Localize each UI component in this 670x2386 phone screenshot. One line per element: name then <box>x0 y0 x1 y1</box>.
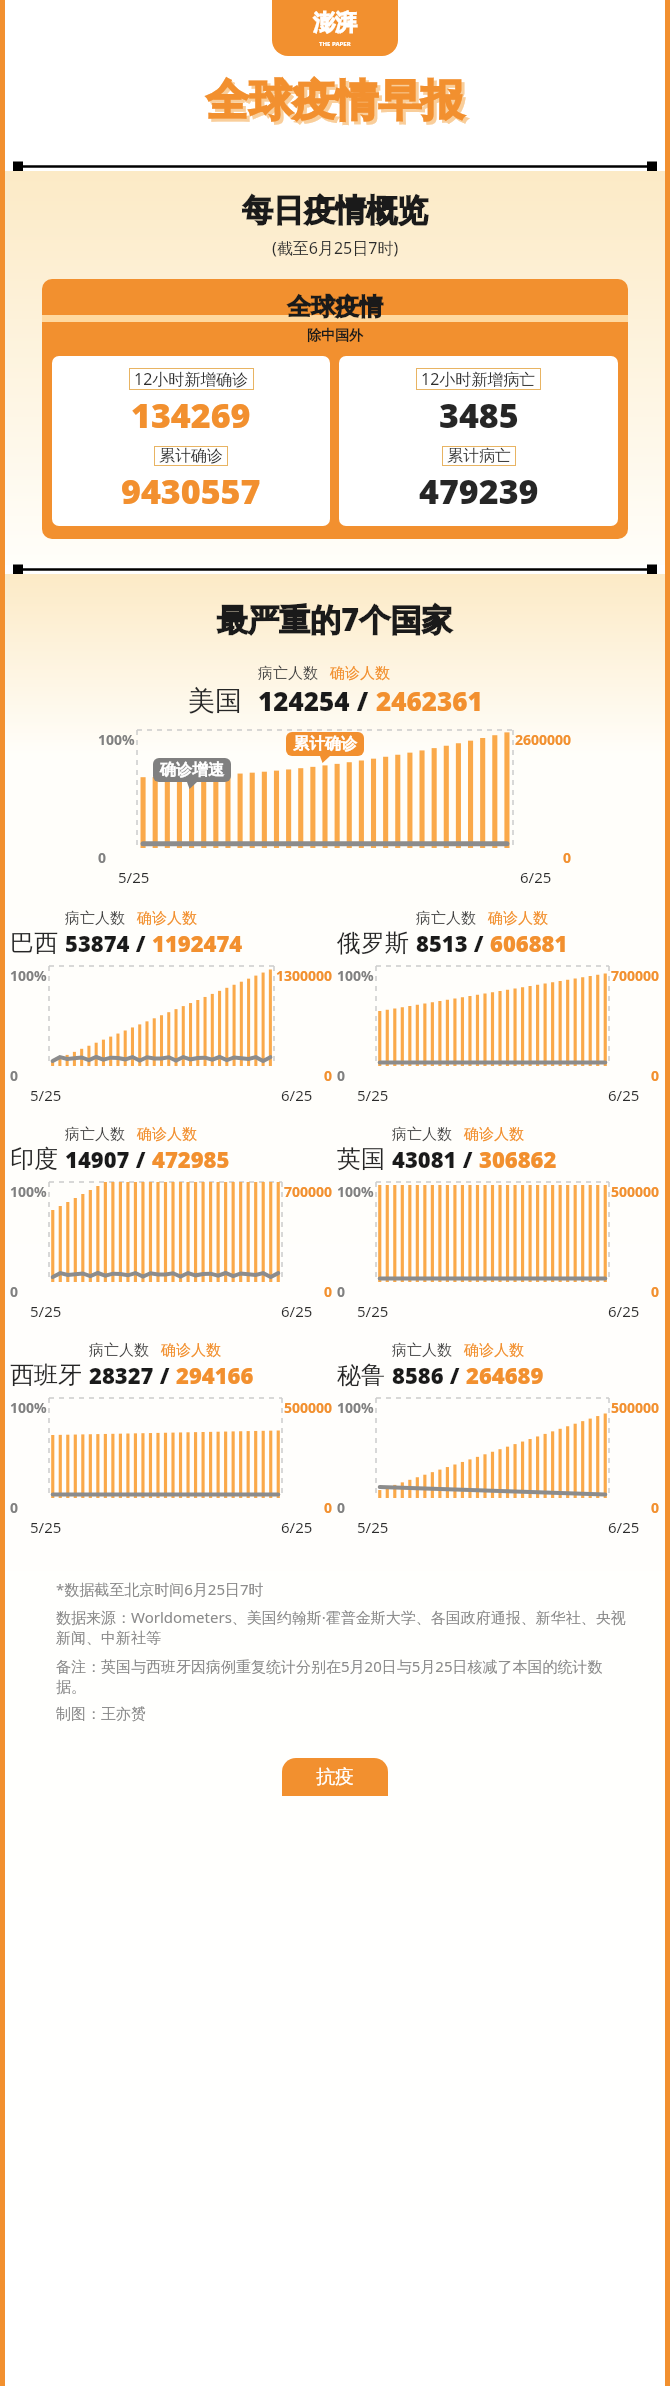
staticText: 病亡人数 <box>258 664 318 683</box>
staticText: 确诊人数 <box>464 1341 524 1360</box>
button[interactable]: 俄罗斯 <box>337 909 568 958</box>
staticText: 100% <box>337 1398 374 1417</box>
staticText: 53874 <box>65 928 130 958</box>
staticText: 6/25 <box>281 1085 313 1105</box>
staticText: 0 <box>10 1498 19 1517</box>
staticText: 确诊人数 <box>137 1125 197 1144</box>
staticText: 8586 <box>392 1360 444 1390</box>
staticText: 3485 <box>439 392 519 438</box>
staticText: / <box>457 1144 479 1174</box>
staticText: / <box>130 1144 152 1174</box>
staticText: 2600000 <box>515 730 572 749</box>
staticText: 100% <box>98 730 135 749</box>
staticText: 抗疫 <box>316 1765 354 1789</box>
staticText: 病亡人数 <box>65 1125 125 1144</box>
staticText: 12小时新增病亡 <box>421 368 536 390</box>
button[interactable]: 12小时新增病亡 <box>339 356 618 526</box>
staticText: 巴西 <box>10 928 58 958</box>
button[interactable]: The Paper logo <box>272 0 398 56</box>
staticText: 制图：王亦赟 <box>56 1705 146 1724</box>
staticText: 5/25 <box>30 1517 62 1537</box>
staticText: 6/25 <box>608 1085 640 1105</box>
staticText: 124254 <box>258 683 350 718</box>
staticText: 0 <box>324 1282 333 1301</box>
staticText: 0 <box>98 848 107 867</box>
staticText: 700000 <box>611 966 660 985</box>
staticText: 0 <box>337 1066 346 1085</box>
staticText: 西班牙 <box>10 1360 82 1390</box>
staticText: 病亡人数 <box>392 1341 452 1360</box>
staticText: 确诊人数 <box>330 664 390 683</box>
staticText: / <box>130 928 152 958</box>
staticText: 0 <box>10 1282 19 1301</box>
staticText: 确诊人数 <box>488 909 548 928</box>
button[interactable]: 全球疫情 <box>42 279 628 539</box>
staticText: 294166 <box>176 1360 254 1390</box>
staticText: 确诊人数 <box>137 909 197 928</box>
staticText: 8513 <box>416 928 468 958</box>
staticText: 俄罗斯 <box>337 928 409 958</box>
staticText: THE PAPER <box>319 40 351 48</box>
staticText: 最严重的7个国家 <box>217 598 453 640</box>
staticText: 5/25 <box>357 1301 389 1321</box>
staticText: (截至6月25日7时) <box>272 237 399 259</box>
staticText: 澎湃 <box>313 9 357 37</box>
staticText: 134269 <box>131 392 251 438</box>
staticText: 264689 <box>466 1360 544 1390</box>
button[interactable]: 西班牙 <box>10 1341 254 1390</box>
staticText: 确诊人数 <box>464 1125 524 1144</box>
staticText: 6/25 <box>520 867 552 887</box>
staticText: 5/25 <box>30 1085 62 1105</box>
staticText: 2462361 <box>376 683 483 718</box>
staticText: 确诊增速 <box>160 760 224 780</box>
staticText: 全球疫情早报 <box>206 74 464 128</box>
button[interactable]: 巴西 <box>10 909 243 958</box>
staticText: 印度 <box>10 1144 58 1174</box>
staticText: 1192474 <box>152 928 243 958</box>
button[interactable]: 秘鲁 <box>337 1341 544 1390</box>
button[interactable]: 英国 <box>337 1125 557 1174</box>
staticText: 100% <box>337 966 374 985</box>
staticText: 6/25 <box>608 1301 640 1321</box>
button[interactable]: 美国 <box>188 664 483 718</box>
staticText: 病亡人数 <box>89 1341 149 1360</box>
button[interactable]: 12小时新增确诊 <box>52 356 330 526</box>
staticText: 43081 <box>392 1144 457 1174</box>
staticText: 确诊人数 <box>161 1341 221 1360</box>
staticText: 累计确诊 <box>293 734 357 754</box>
button[interactable]: 抗疫 <box>282 1758 388 1796</box>
staticText: 100% <box>10 1398 47 1417</box>
staticText: 累计确诊 <box>159 446 223 466</box>
staticText: 美国 <box>188 684 242 718</box>
staticText: 0 <box>563 848 572 867</box>
staticText: 6/25 <box>281 1517 313 1537</box>
staticText: / <box>154 1360 176 1390</box>
staticText: 0 <box>324 1498 333 1517</box>
staticText: 除中国外 <box>307 327 363 345</box>
staticText: 0 <box>651 1282 660 1301</box>
staticText: 每日疫情概览 <box>242 191 428 230</box>
staticText: 28327 <box>89 1360 154 1390</box>
staticText: 0 <box>651 1066 660 1085</box>
staticText: *数据截至北京时间6月25日7时 <box>56 1579 264 1599</box>
staticText: 500000 <box>611 1398 660 1417</box>
staticText: 9430557 <box>121 468 261 514</box>
staticText: 0 <box>651 1498 660 1517</box>
staticText: 479239 <box>419 468 539 514</box>
staticText: 病亡人数 <box>392 1125 452 1144</box>
staticText: 500000 <box>611 1182 660 1201</box>
button[interactable]: 印度 <box>10 1125 230 1174</box>
staticText: 全球疫情 <box>287 292 383 322</box>
staticText: 英国 <box>337 1144 385 1174</box>
staticText: 606881 <box>490 928 568 958</box>
staticText: 备注：英国与西班牙因病例重复统计分别在5月20日与5月25日核减了本国的统计数据… <box>56 1656 630 1697</box>
staticText: 472985 <box>152 1144 230 1174</box>
staticText: / <box>350 683 376 718</box>
staticText: 100% <box>337 1182 374 1201</box>
staticText: 病亡人数 <box>416 909 476 928</box>
staticText: 秘鲁 <box>337 1360 385 1390</box>
staticText: 0 <box>324 1066 333 1085</box>
staticText: 100% <box>10 966 47 985</box>
staticText: 700000 <box>284 1182 333 1201</box>
staticText: 1300000 <box>276 966 333 985</box>
